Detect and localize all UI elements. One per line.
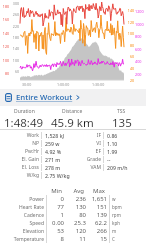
staticText: 140 — [127, 8, 134, 13]
staticText: 140 — [0, 31, 9, 36]
staticText: 140 — [10, 46, 19, 51]
staticText: 1:00:00 — [57, 82, 70, 87]
staticText: Work — [0, 132, 39, 139]
staticText: 180 — [10, 35, 19, 40]
staticText: EF — [73, 148, 101, 155]
staticText: m — [112, 228, 117, 234]
staticText: Avg — [62, 187, 84, 195]
staticText: Grade — [73, 156, 101, 163]
staticText: 1200 — [135, 9, 145, 14]
staticText: Distance — [62, 108, 83, 115]
staticText: Pw:Hr — [0, 148, 39, 155]
staticText: 30:00 — [22, 82, 32, 87]
staticText: Min — [44, 187, 62, 195]
staticText: 80 — [64, 211, 86, 219]
staticText: 259 w — [45, 140, 60, 147]
staticText: 8 — [47, 235, 64, 243]
staticText: 1000 — [135, 22, 145, 27]
staticText: Speed — [0, 220, 44, 227]
staticText: 130 — [64, 203, 86, 211]
staticText: 62.2 — [86, 219, 107, 227]
button[interactable]: Entire Workout — [0, 89, 146, 106]
staticText: 0.86 — [107, 132, 118, 139]
staticText: 53 — [47, 227, 64, 235]
staticText: 209 m/h — [107, 164, 128, 171]
staticText: 1.10 — [107, 140, 118, 147]
staticText: 200 — [135, 72, 145, 77]
staticText: VI — [73, 140, 101, 147]
staticText: 139 — [86, 211, 107, 219]
staticText: 77 — [47, 203, 64, 211]
staticText: 25.3 — [64, 219, 86, 227]
staticText: 800 — [135, 34, 145, 39]
staticText: 80 — [0, 71, 9, 76]
staticText: 60 — [127, 54, 134, 59]
staticText: 20 — [127, 78, 134, 83]
staticText: Temperature — [0, 236, 44, 243]
staticText: C — [112, 236, 115, 242]
staticText: 1,528 kJ — [45, 132, 65, 139]
staticText: 260 — [10, 12, 19, 17]
staticText: 120 — [0, 44, 9, 49]
staticText: rpm — [112, 212, 121, 218]
staticText: Elevation — [0, 228, 44, 235]
staticText: 80 — [127, 43, 134, 48]
staticText: IF — [73, 132, 101, 139]
staticText: 180 — [0, 4, 9, 9]
staticText: VAM — [73, 164, 101, 171]
staticText: 135 — [112, 115, 132, 131]
staticText: Duration — [14, 108, 35, 115]
staticText: -- — [107, 156, 111, 163]
staticText: 11 — [64, 235, 86, 243]
staticText: W/kg — [0, 172, 39, 179]
staticText: NP — [0, 140, 39, 147]
staticText: Cadence — [0, 212, 44, 219]
staticText: 151 — [86, 203, 107, 211]
staticText: Heart Rate — [0, 204, 44, 211]
staticText: 160 — [0, 17, 9, 22]
staticText: El. Loss — [0, 164, 39, 171]
staticText: 120 — [64, 227, 86, 235]
staticText: 45.9 km — [51, 115, 94, 131]
staticText: 100 — [127, 31, 134, 36]
staticText: 271 m — [45, 156, 61, 163]
staticText: 40 — [127, 66, 134, 71]
staticText: 220 — [10, 24, 19, 29]
staticText: TSS — [117, 108, 126, 115]
staticText: 100 — [0, 58, 9, 63]
staticText: 1,651 — [86, 195, 107, 203]
staticText: 120 — [127, 20, 134, 25]
staticText: 2.75 W/kg — [45, 172, 70, 179]
staticText: El. Gain — [0, 156, 39, 163]
staticText: bpm — [112, 204, 122, 210]
staticText: 1 — [47, 211, 64, 219]
staticText: 278 m — [45, 164, 61, 171]
staticText: 0.00 — [47, 219, 64, 227]
staticText: 1:48:49 — [4, 115, 44, 131]
staticText: 266 — [86, 227, 107, 235]
staticText: Power — [0, 196, 44, 203]
staticText: w — [112, 196, 116, 202]
staticText: kph — [112, 220, 120, 226]
staticText: 600 — [135, 47, 145, 52]
staticText: 1:30:00 — [92, 82, 105, 87]
staticText: 1.99 — [107, 148, 118, 155]
staticText: 60 — [10, 69, 19, 74]
staticText: 400 — [135, 59, 145, 64]
staticText: 0 — [47, 195, 64, 203]
staticText: 100 — [10, 58, 19, 63]
staticText: Max — [84, 187, 105, 195]
staticText: 300 — [10, 1, 19, 6]
staticText: Entire Workout — [16, 92, 73, 103]
staticText: 15 — [86, 235, 107, 243]
staticText: 4.92 % — [45, 148, 62, 155]
staticText: 236 — [64, 195, 86, 203]
